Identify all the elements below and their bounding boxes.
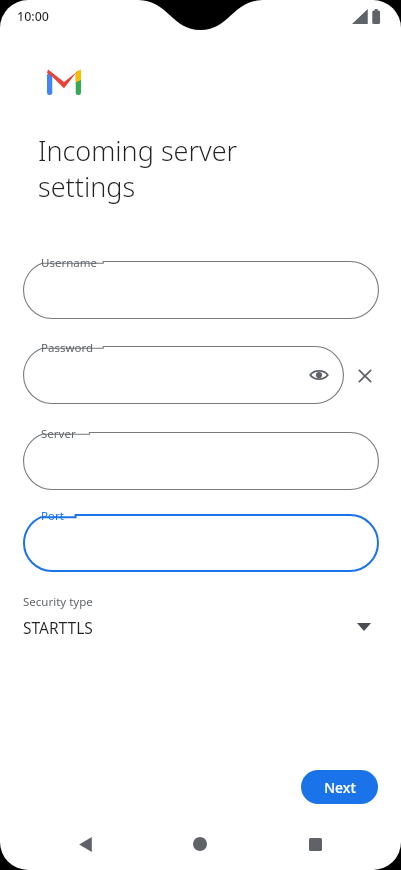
button[interactable]: Home: [185, 829, 215, 859]
button[interactable]: Username: [23, 261, 379, 319]
staticText: Username: [41, 255, 97, 271]
staticText: Security type: [23, 594, 93, 610]
staticText: Server: [41, 426, 76, 442]
button[interactable]: Recent apps: [300, 829, 330, 859]
staticText: Port: [41, 508, 64, 524]
staticText: 10:00: [17, 8, 50, 25]
button[interactable]: Security type: [23, 592, 379, 647]
button[interactable]: Next: [301, 770, 378, 804]
button[interactable]: Show password: [306, 362, 332, 388]
button[interactable]: Clear password: [354, 365, 376, 387]
button[interactable]: Server: [23, 432, 379, 490]
staticText: STARTTLS: [23, 617, 93, 638]
button[interactable]: Password: [23, 346, 344, 404]
button[interactable]: Back: [70, 829, 100, 859]
staticText: Next: [324, 778, 356, 797]
staticText: Incoming server settings: [38, 132, 328, 205]
button[interactable]: Port: [23, 514, 379, 572]
staticText: Password: [41, 340, 94, 356]
